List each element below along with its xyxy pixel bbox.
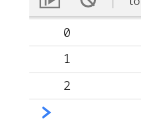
button[interactable]: Expand node	[29, 99, 141, 126]
button[interactable]: 0	[29, 19, 141, 46]
button[interactable]: Step over	[39, 0, 60, 11]
staticText: to	[129, 0, 141, 5]
staticText: 0	[63, 24, 71, 41]
button[interactable]: 1	[29, 45, 141, 72]
button[interactable]: 2	[29, 72, 141, 99]
staticText: 2	[63, 77, 71, 94]
button[interactable]: to	[129, 0, 141, 5]
staticText: 1	[63, 50, 71, 67]
button[interactable]: Mute breakpoints	[79, 0, 98, 10]
